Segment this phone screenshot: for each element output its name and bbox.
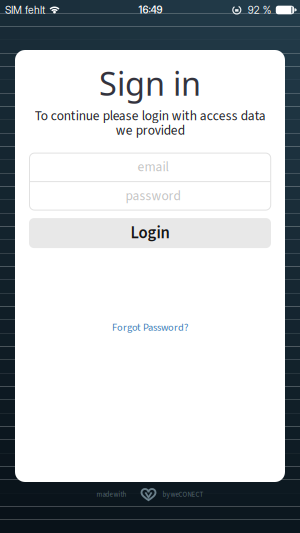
staticText: email bbox=[138, 157, 169, 177]
staticText: Forgot Password? bbox=[112, 320, 188, 335]
button[interactable]: Forgot Password? bbox=[112, 320, 188, 335]
staticText: 16:49 bbox=[138, 4, 162, 16]
staticText: Login bbox=[130, 221, 169, 245]
staticText: by weCONECT bbox=[162, 490, 203, 499]
staticText: password bbox=[126, 186, 181, 206]
staticText: Sign in bbox=[99, 61, 201, 105]
staticText: 92 % bbox=[248, 4, 272, 16]
button[interactable]: password bbox=[29, 182, 271, 210]
staticText: SIM fehlt bbox=[5, 4, 45, 16]
staticText: To continue please login with access dat… bbox=[34, 107, 265, 140]
staticText: made with bbox=[96, 490, 126, 499]
button[interactable]: email bbox=[29, 153, 271, 181]
button[interactable]: Login bbox=[29, 218, 271, 248]
